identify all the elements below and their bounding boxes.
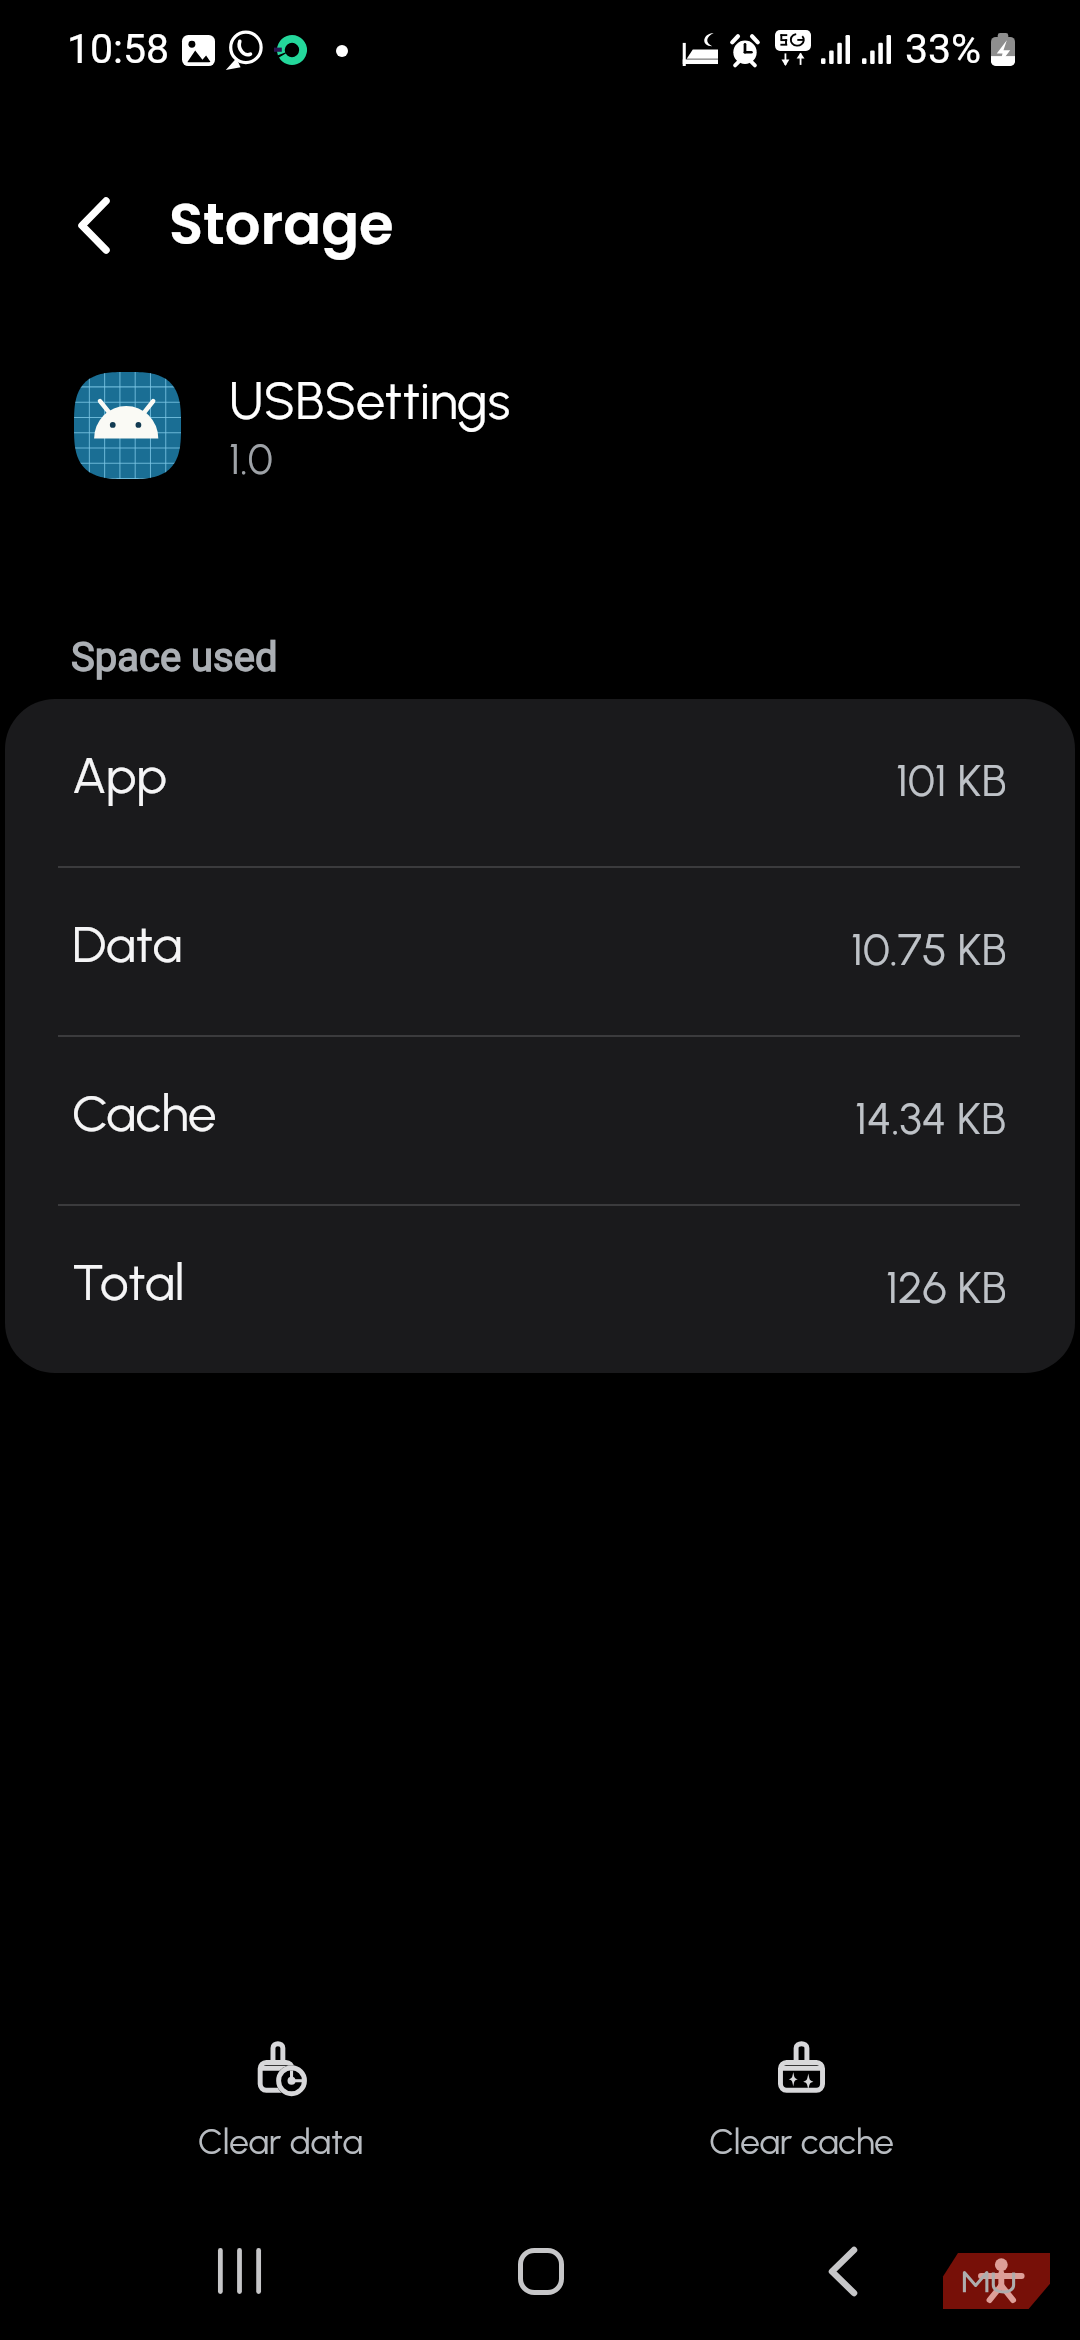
button[interactable]: Clear data	[20, 2036, 540, 2169]
staticText: Clear cache	[709, 2121, 894, 2163]
button[interactable]: Data	[5, 868, 1075, 1037]
button[interactable]: Total	[5, 1206, 1075, 1373]
staticText: Space used	[71, 634, 278, 681]
staticText: 10:58	[67, 25, 170, 73]
staticText: Clear data	[198, 2121, 363, 2163]
staticText: Cache	[72, 1083, 217, 1144]
staticText: 33%	[905, 25, 982, 73]
staticText: Storage	[169, 185, 394, 263]
button[interactable]: Clear cache	[541, 2036, 1061, 2169]
staticText: 14.34 KB	[855, 1091, 1007, 1145]
button[interactable]: Cache	[5, 1037, 1075, 1206]
staticText: Total	[72, 1252, 185, 1313]
staticText: 101 KB	[896, 753, 1007, 807]
staticText: USBSettings	[229, 370, 510, 432]
button[interactable]: Recent apps	[88, 2240, 390, 2302]
button[interactable]: Home	[390, 2240, 692, 2302]
staticText: Data	[72, 914, 183, 975]
button[interactable]: App	[5, 699, 1075, 868]
staticText: 10.75 KB	[851, 922, 1007, 976]
button[interactable]: Navigate up	[51, 182, 137, 268]
button[interactable]: Back	[692, 2240, 994, 2302]
staticText: 126 KB	[886, 1260, 1007, 1314]
staticText: 1.0	[229, 434, 273, 484]
staticText: App	[72, 745, 167, 806]
